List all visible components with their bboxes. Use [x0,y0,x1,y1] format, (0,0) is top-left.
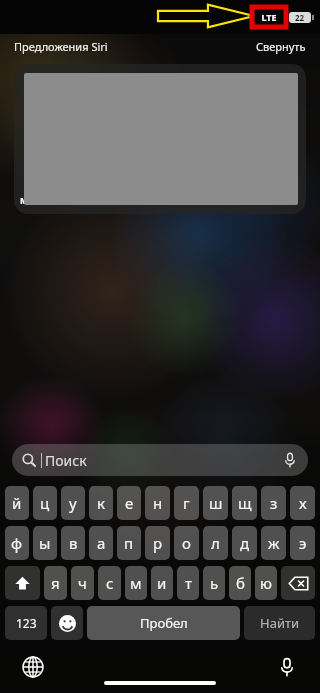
button[interactable]: Dictation [274,654,300,680]
staticText: м [130,573,142,593]
button[interactable]: н [145,486,170,520]
button[interactable]: о [174,526,199,560]
button[interactable]: й [5,486,29,520]
staticText: е [125,493,134,513]
staticText: х [299,493,307,513]
button[interactable]: и [151,566,173,600]
button[interactable]: м [125,566,147,600]
button[interactable]: Пробел [87,606,240,640]
staticText: и [157,573,167,593]
staticText: й [12,493,22,513]
button[interactable]: M [14,64,306,214]
button[interactable]: т [177,566,199,600]
button[interactable]: п [117,526,141,560]
button[interactable]: с [98,566,121,600]
staticText: л [211,533,220,553]
staticText: э [299,533,307,553]
button[interactable]: ч [71,566,94,600]
button[interactable]: х [290,486,315,520]
staticText: LTE [261,11,277,23]
button[interactable]: Change language [20,654,46,680]
button[interactable]: д [232,526,257,560]
button[interactable]: щ [232,486,257,520]
button[interactable]: а [89,526,113,560]
staticText: г [183,493,190,513]
button[interactable]: Найти [244,606,315,640]
staticText: з [270,493,278,513]
staticText: я [51,573,60,593]
staticText: у [69,493,77,513]
button[interactable]: е [117,486,141,520]
staticText: Пробел [140,614,188,632]
button[interactable]: Backspace [281,566,315,600]
button[interactable]: Emoji [51,606,83,640]
button[interactable]: б [229,566,251,600]
staticText: Свернуть [256,39,306,54]
button[interactable]: Свернуть [256,39,306,54]
staticText: т [185,573,192,593]
button[interactable]: ы [33,526,57,560]
staticText: 123 [16,615,37,631]
staticText: Поиск [45,451,87,470]
button[interactable]: ф [5,526,29,560]
staticText: ч [78,573,87,593]
button[interactable]: Поиск [12,444,308,476]
button[interactable]: ю [255,566,277,600]
button[interactable]: ш [203,486,228,520]
button[interactable]: в [61,526,85,560]
button[interactable]: л [203,526,228,560]
staticText: н [153,493,163,513]
button[interactable]: ц [33,486,57,520]
button[interactable]: Shift [5,566,40,600]
staticText: к [97,493,105,513]
staticText: ц [40,493,50,513]
button[interactable]: з [261,486,286,520]
button[interactable]: р [145,526,170,560]
staticText: ш [209,493,223,513]
staticText: о [182,533,191,553]
staticText: б [236,573,245,593]
staticText: с [106,573,114,593]
button[interactable]: к [89,486,113,520]
button[interactable]: у [61,486,85,520]
staticText: ь [210,573,219,593]
staticText: ж [268,533,280,553]
staticText: M [20,194,29,206]
button[interactable]: э [290,526,315,560]
staticText: Найти [260,614,300,632]
staticText: щ [238,493,252,513]
staticText: ф [11,533,23,553]
staticText: р [153,533,163,553]
staticText: а [97,533,106,553]
button[interactable]: г [174,486,199,520]
staticText: в [69,533,78,553]
button[interactable]: ж [261,526,286,560]
staticText: п [124,533,134,553]
staticText: ы [39,533,51,553]
button[interactable]: я [44,566,67,600]
button[interactable]: 123 [5,606,47,640]
staticText: д [240,533,250,553]
button[interactable]: ь [203,566,225,600]
staticText: ю [260,573,272,593]
staticText: 22 [295,12,305,23]
staticText: Предложения Siri [14,39,108,54]
